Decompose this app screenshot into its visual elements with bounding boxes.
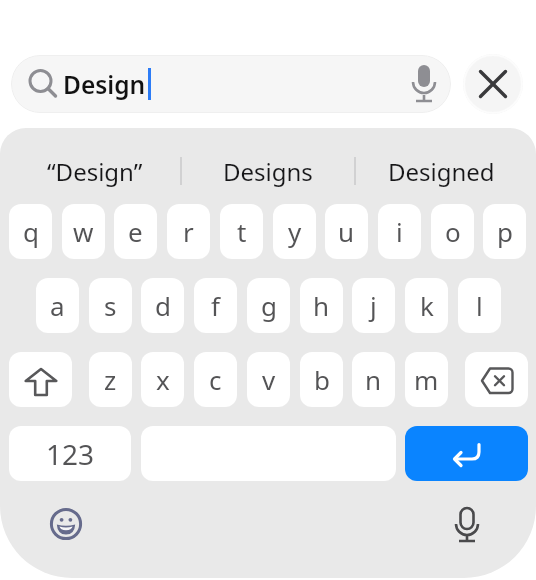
staticText: z bbox=[104, 362, 117, 397]
button[interactable] bbox=[465, 352, 528, 407]
button[interactable]: 123 bbox=[9, 426, 131, 481]
button[interactable]: e bbox=[114, 204, 157, 259]
staticText: Designed bbox=[388, 155, 495, 188]
button[interactable]: Designed bbox=[355, 143, 527, 199]
staticText: p bbox=[497, 214, 513, 249]
staticText: Designs bbox=[223, 155, 313, 188]
staticText: y bbox=[288, 214, 302, 249]
staticText: x bbox=[156, 362, 170, 397]
button[interactable]: u bbox=[325, 204, 368, 259]
button[interactable]: z bbox=[89, 352, 132, 407]
button[interactable] bbox=[405, 426, 528, 481]
button[interactable]: o bbox=[431, 204, 474, 259]
button[interactable]: b bbox=[300, 352, 343, 407]
button[interactable]: Design bbox=[11, 55, 451, 113]
staticText: l bbox=[476, 288, 483, 323]
button[interactable] bbox=[441, 498, 493, 550]
staticText: q bbox=[23, 214, 39, 249]
button[interactable]: n bbox=[352, 352, 395, 407]
button[interactable]: t bbox=[220, 204, 263, 259]
staticText: f bbox=[211, 288, 220, 323]
staticText: “Design” bbox=[47, 155, 143, 188]
button[interactable]: “Design” bbox=[4, 143, 185, 199]
button[interactable]: k bbox=[405, 278, 448, 333]
button[interactable]: l bbox=[458, 278, 501, 333]
staticText: Design bbox=[63, 68, 146, 101]
button[interactable]: j bbox=[352, 278, 395, 333]
button[interactable]: g bbox=[247, 278, 290, 333]
button[interactable]: y bbox=[273, 204, 316, 259]
staticText: a bbox=[50, 288, 65, 323]
staticText: n bbox=[365, 362, 382, 397]
staticText: r bbox=[183, 214, 194, 249]
button[interactable]: q bbox=[9, 204, 52, 259]
button[interactable] bbox=[40, 498, 92, 550]
staticText: k bbox=[420, 288, 434, 323]
staticText: o bbox=[445, 214, 461, 249]
button[interactable]: a bbox=[36, 278, 79, 333]
button[interactable]: h bbox=[300, 278, 343, 333]
staticText: d bbox=[155, 288, 171, 323]
staticText: h bbox=[313, 288, 330, 323]
button[interactable]: s bbox=[89, 278, 132, 333]
staticText: j bbox=[370, 288, 377, 323]
button[interactable]: r bbox=[167, 204, 210, 259]
button[interactable]: x bbox=[141, 352, 184, 407]
button[interactable]: v bbox=[247, 352, 290, 407]
button[interactable] bbox=[9, 352, 72, 407]
button[interactable]: Designs bbox=[181, 143, 355, 199]
staticText: s bbox=[104, 288, 117, 323]
button[interactable]: f bbox=[194, 278, 237, 333]
button[interactable]: d bbox=[141, 278, 184, 333]
button[interactable]: i bbox=[378, 204, 421, 259]
staticText: c bbox=[209, 362, 222, 397]
button[interactable]: w bbox=[62, 204, 105, 259]
button[interactable]: m bbox=[405, 352, 448, 407]
staticText: v bbox=[262, 362, 276, 397]
staticText: m bbox=[414, 362, 439, 397]
staticText: g bbox=[261, 288, 277, 323]
button[interactable]: c bbox=[194, 352, 237, 407]
staticText: e bbox=[128, 214, 143, 249]
staticText: t bbox=[237, 214, 247, 249]
staticText: u bbox=[338, 214, 355, 249]
button[interactable]: p bbox=[483, 204, 526, 259]
button[interactable] bbox=[463, 54, 523, 114]
staticText: 123 bbox=[46, 435, 95, 473]
staticText: w bbox=[73, 214, 94, 249]
staticText: b bbox=[314, 362, 330, 397]
staticText: i bbox=[396, 214, 403, 249]
